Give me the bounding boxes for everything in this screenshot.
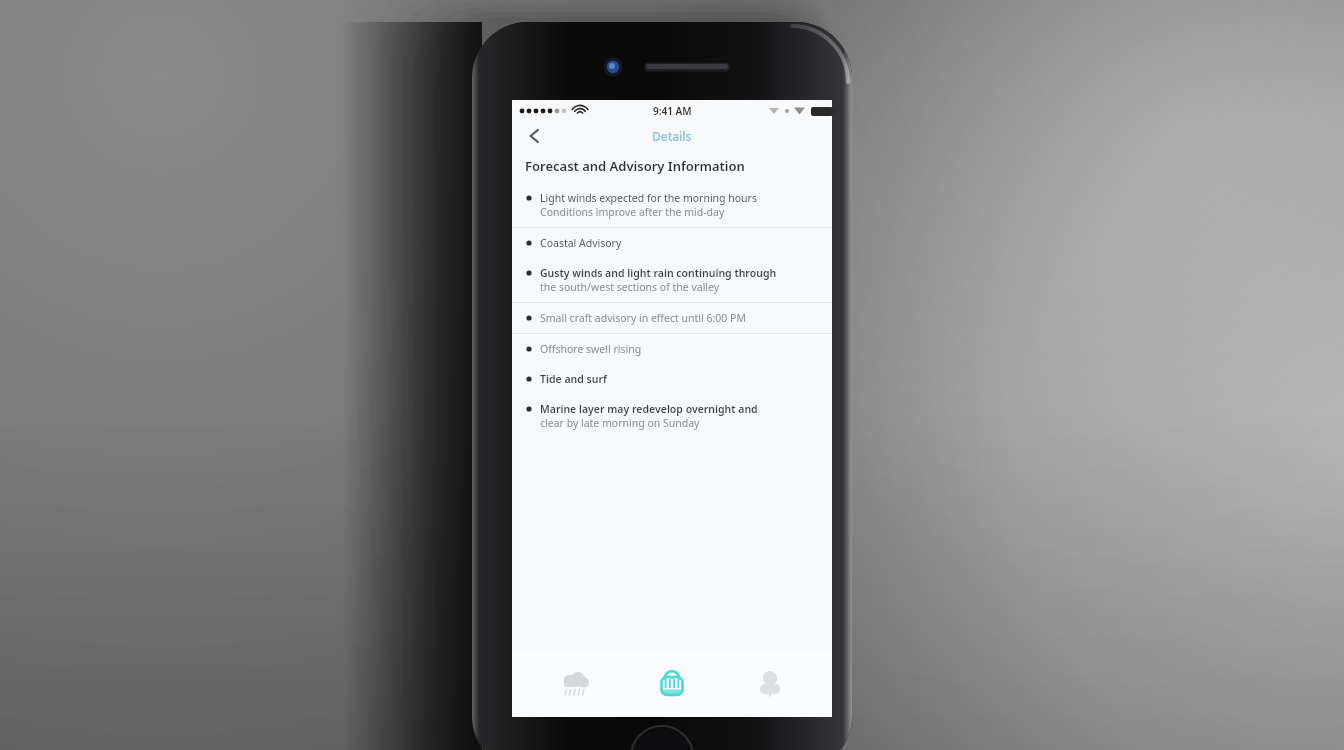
staticText: 9:41 AM [653,104,692,118]
button[interactable]: Profile [735,657,805,711]
staticText: Light winds expected for the morning hou… [540,191,757,205]
staticText: Marine layer may redevelop overnight and [540,402,758,416]
staticText: Tide and surf [540,372,607,386]
button[interactable]: Back [520,121,550,151]
button[interactable]: Gusty winds and light rain continuing th… [512,258,832,302]
staticText: Details [652,128,692,144]
button[interactable]: Offshore swell rising [512,334,832,364]
staticText: Gusty winds and light rain continuing th… [540,266,777,280]
button[interactable]: Coastal Advisory [512,228,832,258]
staticText: Forecast and Advisory Information [525,157,745,175]
staticText: Coastal Advisory [540,236,622,250]
staticText: Offshore swell rising [540,342,642,356]
button[interactable]: Weather [540,657,610,711]
staticText: the south/west sections of the valley [540,280,720,294]
staticText: clear by late morning on Sunday [540,416,700,430]
button[interactable]: Tide and surf [512,364,832,394]
button[interactable]: Small craft advisory in effect until 6:0… [512,303,832,333]
staticText: Conditions improve after the mid-day [540,205,725,219]
button[interactable]: Marine layer may redevelop overnight and [512,394,832,438]
button[interactable]: Light winds expected for the morning hou… [512,183,832,227]
button[interactable]: Forecast [637,657,707,711]
staticText: Small craft advisory in effect until 6:0… [540,311,746,325]
